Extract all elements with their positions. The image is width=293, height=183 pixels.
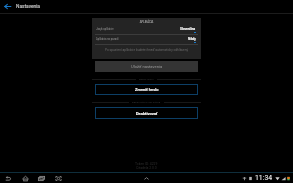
staticText: Slovenčina bbox=[180, 27, 196, 31]
staticText: ZMENA HESLA bbox=[139, 78, 154, 81]
staticText: 11:34 bbox=[255, 174, 273, 182]
button[interactable]: Back bbox=[0, 0, 14, 13]
button[interactable]: Aplikácia na pozadí bbox=[96, 35, 196, 44]
button[interactable]: Recent apps bbox=[36, 173, 46, 183]
staticText: Nikdy bbox=[188, 37, 196, 41]
button[interactable]: Uložiť nastavenia bbox=[95, 61, 198, 72]
button[interactable]: Screenshot bbox=[53, 173, 63, 183]
button[interactable]: Deaktivovať bbox=[95, 107, 198, 119]
staticText: Citadela 2.0.0 bbox=[136, 166, 157, 170]
staticText: Token ID: 4229 bbox=[135, 162, 158, 166]
staticText: DEAKTIVÁCIA APLIKÁCIE bbox=[132, 101, 161, 104]
staticText: Zmeniť heslo bbox=[135, 87, 159, 92]
staticText: Nastavenia bbox=[16, 4, 40, 10]
button[interactable]: Back bbox=[3, 173, 13, 183]
staticText: Aplikácia na pozadí bbox=[96, 38, 119, 41]
staticText: Deaktivovať bbox=[136, 111, 158, 116]
staticText: Jazyk aplikácie bbox=[96, 28, 114, 31]
staticText: APLIKÁCIA bbox=[92, 20, 201, 23]
button[interactable]: Home bbox=[20, 173, 30, 183]
button[interactable]: Jazyk aplikácie bbox=[96, 25, 196, 34]
staticText: Uložiť nastavenia bbox=[131, 64, 163, 69]
button[interactable]: Zmeniť heslo bbox=[95, 84, 198, 95]
staticText: Po spustení aplikácie budete ihneď autom… bbox=[92, 48, 201, 52]
